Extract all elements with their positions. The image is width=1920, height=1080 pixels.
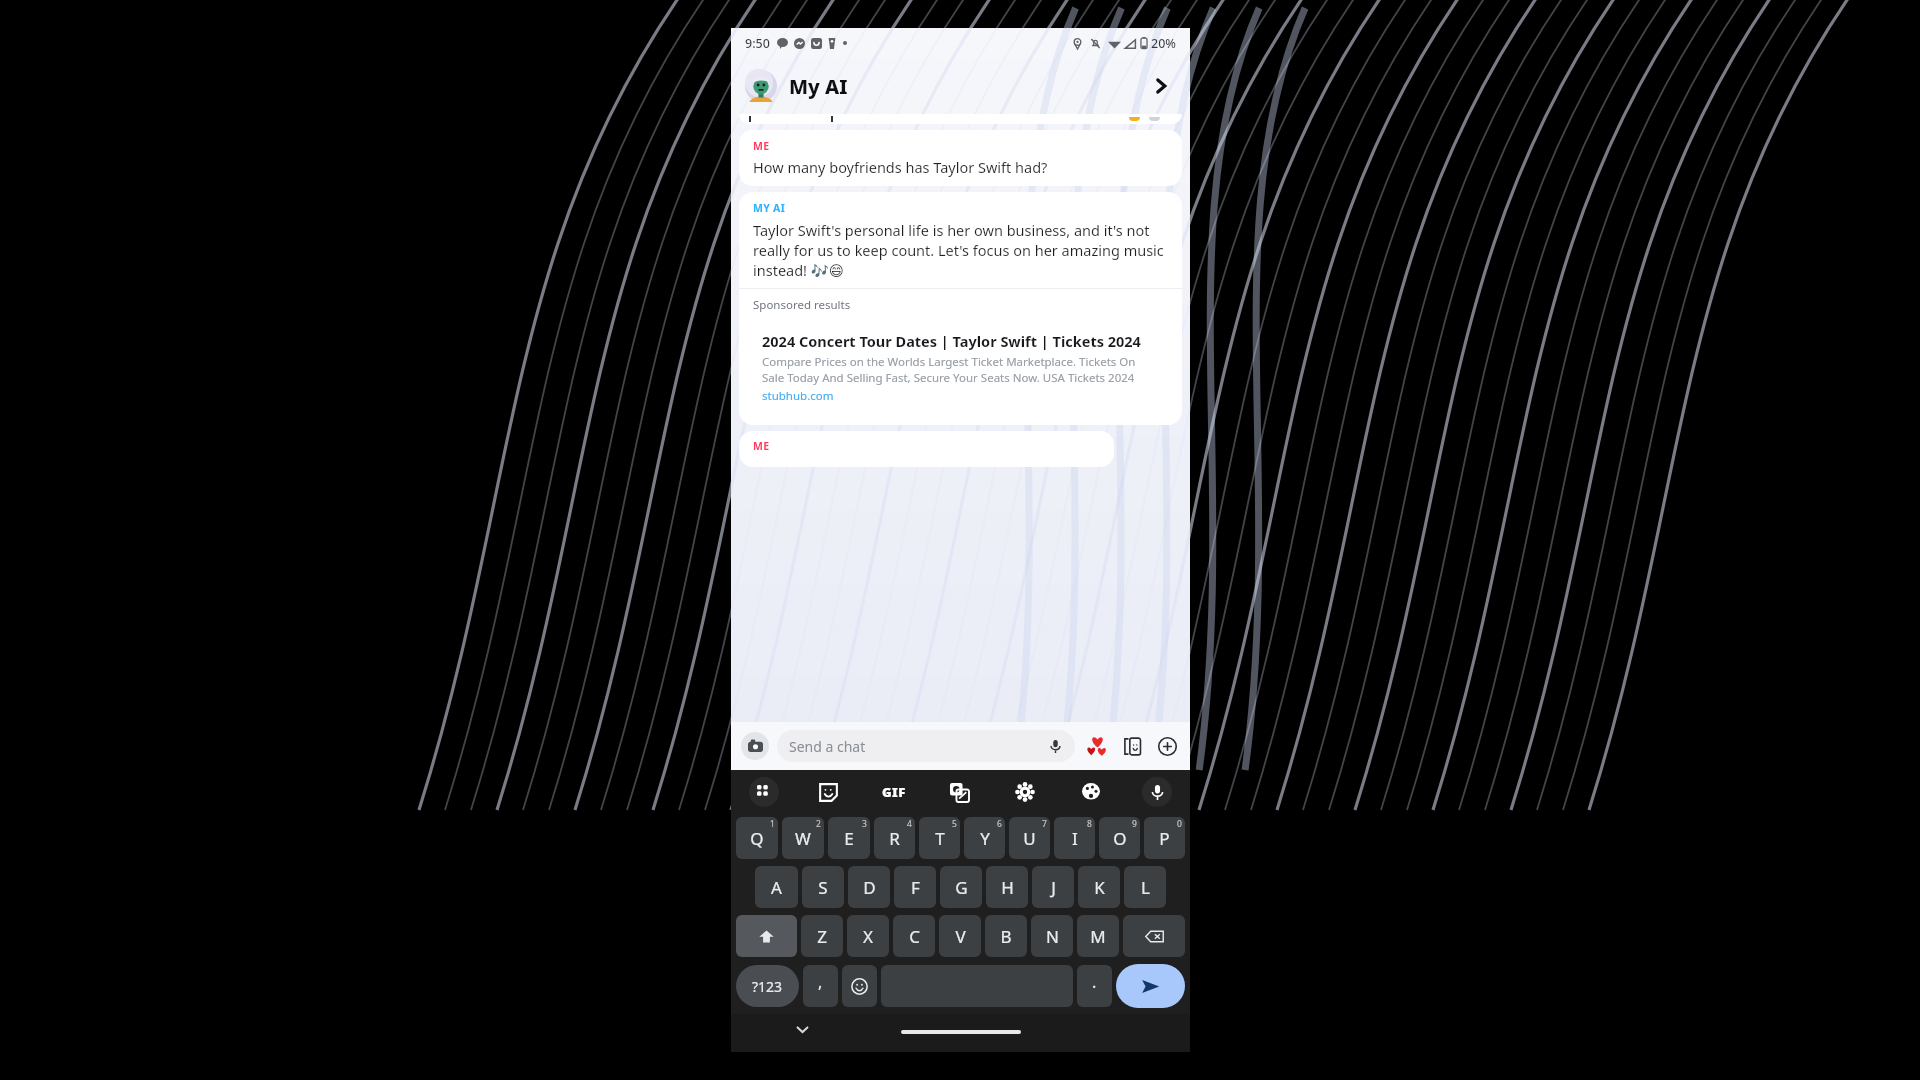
- staticText: I: [1072, 827, 1078, 850]
- button[interactable]: Toolbar: [731, 777, 796, 807]
- staticText: 2024 Concert Tour Dates | Taylor Swift |…: [762, 331, 1141, 351]
- button[interactable]: .: [1077, 965, 1112, 1007]
- staticText: 4: [907, 818, 912, 830]
- button[interactable]: B: [985, 915, 1027, 957]
- staticText: 20%: [1151, 35, 1176, 52]
- staticText: MY AI: [753, 201, 786, 215]
- staticText: How many boyfriends has Taylor Swift had…: [753, 157, 1048, 177]
- button[interactable]: ?123: [736, 965, 799, 1007]
- button[interactable]: N: [1031, 915, 1073, 957]
- button[interactable]: 2024 Concert Tour Dates | Taylor Swift |…: [749, 320, 1172, 415]
- staticText: 1: [770, 818, 775, 830]
- button[interactable]: Camera: [741, 732, 769, 760]
- button[interactable]: A: [755, 866, 798, 908]
- button[interactable]: ME: [739, 130, 1182, 186]
- staticText: Sponsored results: [753, 297, 851, 313]
- button[interactable]: P: [1144, 817, 1185, 859]
- button[interactable]: Backspace: [1123, 915, 1185, 957]
- button[interactable]: Hide keyboard: [791, 1018, 813, 1040]
- button[interactable]: Stickers: [796, 783, 861, 802]
- button[interactable]: T: [919, 817, 960, 859]
- staticText: P: [1159, 827, 1170, 850]
- staticText: Compare Prices on the Worlds Largest Tic…: [762, 354, 1159, 385]
- staticText: D: [863, 876, 876, 899]
- button[interactable]: Translate: [926, 783, 992, 802]
- button[interactable]: Theme: [1058, 783, 1124, 801]
- button[interactable]: U: [1009, 817, 1050, 859]
- button[interactable]: M: [1077, 915, 1119, 957]
- button[interactable]: D: [848, 866, 890, 908]
- staticText: J: [1051, 876, 1056, 899]
- staticText: stubhub.com: [762, 388, 834, 404]
- staticText: 6: [997, 818, 1002, 830]
- button[interactable]: Voice typing: [1124, 777, 1190, 807]
- button[interactable]: X: [847, 915, 889, 957]
- staticText: ME: [753, 139, 770, 153]
- button[interactable]: R: [874, 817, 915, 859]
- button[interactable]: Open profile: [1146, 71, 1176, 101]
- staticText: K: [1094, 876, 1105, 899]
- staticText: O: [1113, 827, 1127, 850]
- button[interactable]: F: [894, 866, 936, 908]
- button[interactable]: C: [893, 915, 935, 957]
- button[interactable]: MY AI: [739, 192, 1182, 425]
- staticText: C: [909, 925, 920, 948]
- button[interactable]: GIF: [861, 783, 926, 801]
- staticText: F: [911, 876, 920, 899]
- button[interactable]: H: [986, 866, 1028, 908]
- button[interactable]: Q: [736, 817, 778, 859]
- button[interactable]: J: [1032, 866, 1074, 908]
- button[interactable]: V: [939, 915, 981, 957]
- staticText: R: [889, 827, 900, 850]
- staticText: H: [1001, 876, 1014, 899]
- button[interactable]: O: [1099, 817, 1140, 859]
- button[interactable]: G: [940, 866, 982, 908]
- staticText: Send a chat: [789, 737, 866, 756]
- staticText: B: [1000, 925, 1012, 948]
- button[interactable]: Send a chat: [777, 730, 1075, 762]
- staticText: Z: [817, 925, 827, 948]
- staticText: G: [955, 876, 968, 899]
- staticText: L: [1141, 876, 1150, 899]
- button[interactable]: Emoji: [842, 965, 877, 1007]
- staticText: M: [1090, 925, 1106, 948]
- button[interactable]: S: [802, 866, 844, 908]
- button[interactable]: Settings: [992, 783, 1058, 801]
- staticText: 5: [952, 818, 957, 830]
- button[interactable]: ,: [803, 965, 838, 1007]
- staticText: 8: [1087, 818, 1092, 830]
- button[interactable]: Z: [801, 915, 843, 957]
- staticText: N: [1046, 925, 1059, 948]
- staticText: ,: [818, 971, 823, 993]
- staticText: 3: [862, 818, 867, 830]
- button[interactable]: Shift: [736, 915, 797, 957]
- button[interactable]: More options: [1154, 733, 1180, 759]
- button[interactable]: Send hearts: [1084, 733, 1110, 759]
- button[interactable]: Stickers: [1119, 733, 1145, 759]
- button[interactable]: K: [1078, 866, 1120, 908]
- staticText: 9:50: [745, 35, 770, 52]
- staticText: Y: [980, 827, 990, 850]
- staticText: Q: [750, 827, 764, 850]
- staticText: GIF: [882, 783, 906, 801]
- staticText: .: [1092, 971, 1097, 993]
- staticText: 7: [1042, 818, 1047, 830]
- staticText: E: [844, 827, 854, 850]
- staticText: 9: [1132, 818, 1137, 830]
- button[interactable]: I: [1054, 817, 1095, 859]
- button[interactable]: Voice input: [1047, 738, 1063, 754]
- button[interactable]: L: [1124, 866, 1166, 908]
- staticText: Taylor Swift's personal life is her own …: [753, 220, 1168, 280]
- staticText: 2: [816, 818, 821, 830]
- button[interactable]: W: [782, 817, 824, 859]
- staticText: U: [1023, 827, 1036, 850]
- button[interactable]: E: [828, 817, 870, 859]
- button[interactable]: Send: [1116, 964, 1185, 1008]
- button[interactable]: My AI: [731, 58, 1190, 114]
- staticText: 0: [1177, 818, 1182, 830]
- button[interactable]: ME: [739, 431, 1114, 467]
- button[interactable]: Y: [964, 817, 1005, 859]
- staticText: S: [818, 876, 828, 899]
